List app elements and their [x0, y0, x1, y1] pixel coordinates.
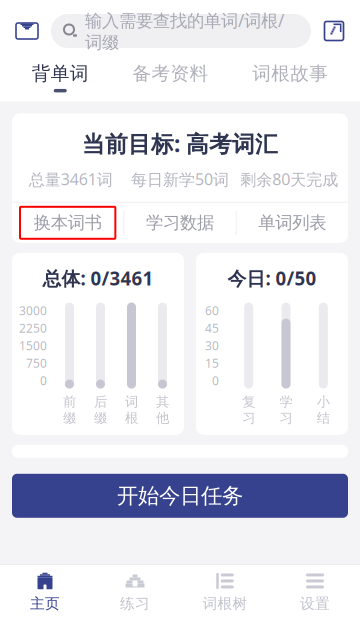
- staticText: 练习: [120, 594, 150, 612]
- button[interactable]: 学习数据: [124, 203, 236, 243]
- staticText: 小: [317, 394, 330, 410]
- staticText: 15: [205, 355, 219, 371]
- staticText: 设置: [300, 594, 330, 612]
- staticText: 每日新学50词: [131, 168, 229, 190]
- staticText: 复: [242, 394, 255, 410]
- button[interactable]: 设置: [270, 564, 360, 620]
- staticText: 背单词: [32, 62, 89, 85]
- staticText: 他: [156, 410, 169, 426]
- staticText: 习: [279, 410, 292, 426]
- staticText: 词: [125, 394, 138, 410]
- button[interactable]: 词根故事: [240, 62, 340, 92]
- staticText: 后: [94, 394, 107, 410]
- button[interactable]: 背单词: [20, 62, 101, 92]
- staticText: 学: [279, 394, 292, 410]
- button[interactable]: 词根树: [180, 564, 270, 620]
- staticText: 今日: 0/50: [227, 266, 316, 291]
- button[interactable]: 备考资料: [120, 62, 220, 92]
- staticText: 前: [63, 394, 76, 410]
- staticText: 剩余80天完成: [240, 168, 338, 190]
- button[interactable]: 单词列表: [237, 203, 348, 243]
- staticText: 当前目标: 高考词汇: [82, 128, 278, 158]
- button[interactable]: 主页: [0, 564, 90, 620]
- staticText: 45: [205, 320, 219, 336]
- button[interactable]: Mail: [14, 19, 40, 43]
- staticText: 总量3461词: [29, 168, 113, 190]
- staticText: 缀: [94, 410, 107, 426]
- staticText: 0: [212, 373, 219, 388]
- staticText: 30: [205, 338, 219, 353]
- button[interactable]: 练习: [90, 564, 180, 620]
- staticText: 0: [40, 373, 47, 388]
- staticText: 词根故事: [252, 62, 328, 85]
- staticText: 开始今日任务: [117, 483, 243, 509]
- staticText: 总体: 0/3461: [42, 266, 153, 291]
- staticText: 2250: [19, 320, 47, 336]
- staticText: 主页: [30, 594, 60, 612]
- staticText: 其: [156, 394, 169, 410]
- button[interactable]: 换本词书: [12, 203, 123, 243]
- staticText: 学习数据: [146, 212, 214, 233]
- staticText: 单词列表: [258, 212, 326, 233]
- staticText: 根: [125, 410, 138, 426]
- staticText: 换本词书: [34, 212, 102, 233]
- staticText: 习: [242, 410, 255, 426]
- staticText: 750: [26, 355, 47, 371]
- staticText: 词根树: [202, 594, 247, 612]
- staticText: 缀: [63, 410, 76, 426]
- staticText: 1500: [19, 338, 47, 353]
- staticText: 60: [205, 303, 219, 318]
- staticText: 输入需要查找的单词/词根/词缀: [85, 9, 284, 53]
- staticText: 备考资料: [132, 62, 208, 85]
- button[interactable]: Share: [322, 19, 346, 43]
- button[interactable]: 开始今日任务: [12, 474, 348, 518]
- staticText: 结: [317, 410, 330, 426]
- staticText: 3000: [19, 303, 47, 318]
